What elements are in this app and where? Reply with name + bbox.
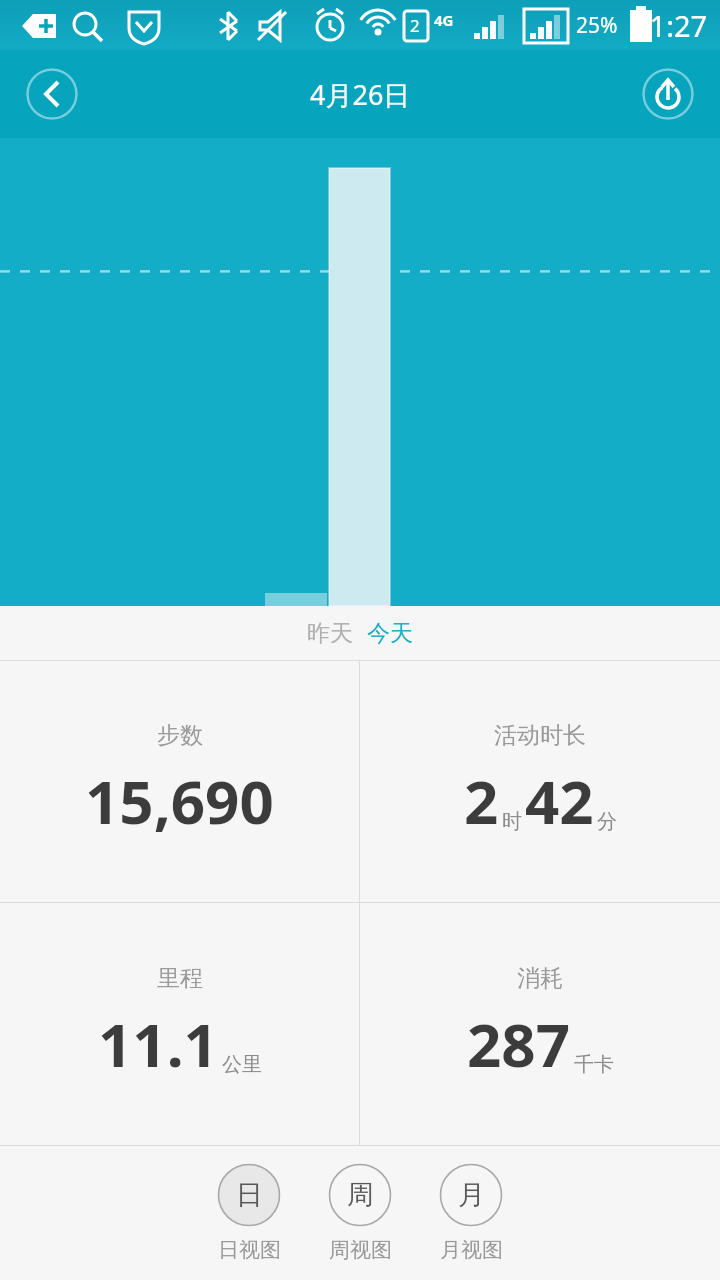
staticText: 4月26日 [310, 76, 411, 113]
staticText: 消耗 [517, 964, 563, 993]
staticText: 千卡 [574, 1052, 614, 1077]
staticText: 2 [464, 760, 499, 842]
staticText: 步数 [157, 721, 203, 750]
button[interactable]: 日 [217, 1163, 281, 1263]
staticText: 287 [467, 1003, 570, 1085]
staticText: 昨天 [307, 619, 353, 648]
staticText: 活动时长 [494, 721, 586, 750]
staticText: 月视图 [440, 1237, 503, 1263]
staticText: 周 [347, 1178, 374, 1212]
staticText: 月 [458, 1178, 485, 1212]
staticText: 周视图 [329, 1237, 392, 1263]
staticText: 分 [597, 809, 617, 834]
staticText: 2 [410, 14, 420, 37]
staticText: 日 [236, 1178, 263, 1212]
staticText: 25% [576, 11, 618, 40]
staticText: 21:27 [633, 6, 708, 45]
button[interactable]: 里程 [0, 903, 359, 1145]
staticText: 15,690 [85, 760, 274, 842]
button[interactable]: 步数 [0, 661, 359, 902]
button[interactable]: Back [26, 68, 78, 120]
button[interactable]: Share [642, 68, 694, 120]
staticText: 里程 [157, 964, 203, 993]
staticText: 4G [434, 10, 454, 30]
button[interactable]: 活动时长 [360, 661, 720, 902]
button[interactable]: 周 [328, 1163, 392, 1263]
staticText: 公里 [222, 1052, 262, 1077]
staticText: 42 [525, 760, 594, 842]
staticText: 日视图 [218, 1237, 281, 1263]
button[interactable]: 消耗 [360, 903, 720, 1145]
staticText: 11.1 [98, 1003, 218, 1085]
button[interactable]: 月 [439, 1163, 503, 1263]
staticText: 时 [502, 809, 522, 834]
staticText: 今天 [367, 619, 413, 648]
